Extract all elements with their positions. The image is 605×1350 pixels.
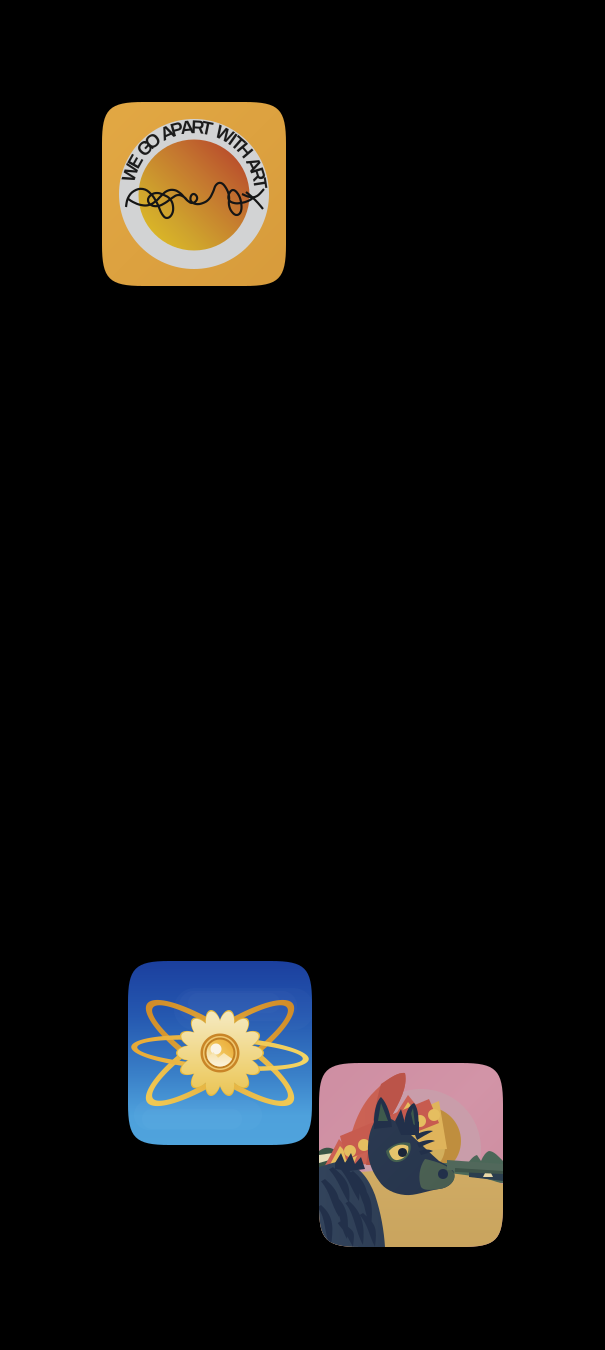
staticText xyxy=(248,147,252,167)
staticText: H xyxy=(238,140,252,161)
staticText: R xyxy=(191,117,204,137)
staticText xyxy=(138,144,142,165)
staticText: A xyxy=(161,122,174,143)
staticText: W xyxy=(121,163,139,183)
button[interactable]: Horse xyxy=(319,1063,503,1247)
staticText: A xyxy=(248,154,261,174)
staticText xyxy=(213,120,217,140)
staticText: G xyxy=(138,138,153,158)
staticText: T xyxy=(232,133,244,154)
staticText: R xyxy=(251,164,264,184)
staticText: O xyxy=(145,131,160,151)
staticText xyxy=(158,126,162,147)
staticText: T xyxy=(201,118,213,138)
staticText: W xyxy=(215,124,233,144)
button[interactable]: We Go Apart With Art xyxy=(102,102,286,286)
staticText: P xyxy=(170,119,183,139)
staticText: E xyxy=(129,151,142,171)
staticText: I xyxy=(230,129,235,149)
staticText: A xyxy=(181,117,194,137)
button[interactable]: Sky Flower xyxy=(128,961,312,1145)
staticText: T xyxy=(254,173,266,194)
